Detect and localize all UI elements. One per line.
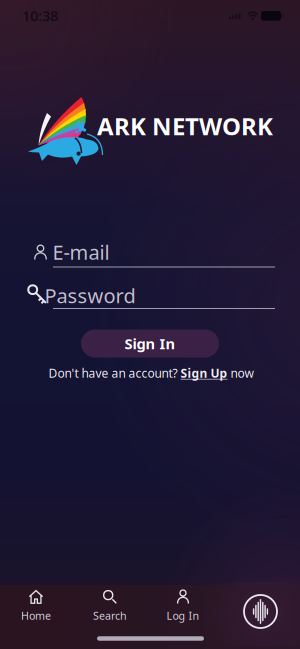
staticText: E-mail <box>52 239 109 265</box>
staticText: Log In <box>166 608 199 623</box>
staticText: Don't have an account? Sign Up now <box>48 365 253 381</box>
staticText: Search <box>93 608 127 623</box>
button[interactable]: Home <box>21 589 51 623</box>
button[interactable]: Record <box>242 593 279 630</box>
button[interactable]: Sign In <box>81 329 219 357</box>
staticText: Password <box>44 282 135 309</box>
staticText: 10:38 <box>22 6 58 25</box>
button[interactable]: Don't have an account? Sign Up now <box>48 365 253 381</box>
staticText: Sign In <box>124 334 175 353</box>
button[interactable]: Search <box>93 589 127 623</box>
staticText: Home <box>21 608 51 623</box>
staticText: ARK NETWORK <box>97 110 273 142</box>
button[interactable]: Log In <box>166 589 199 623</box>
